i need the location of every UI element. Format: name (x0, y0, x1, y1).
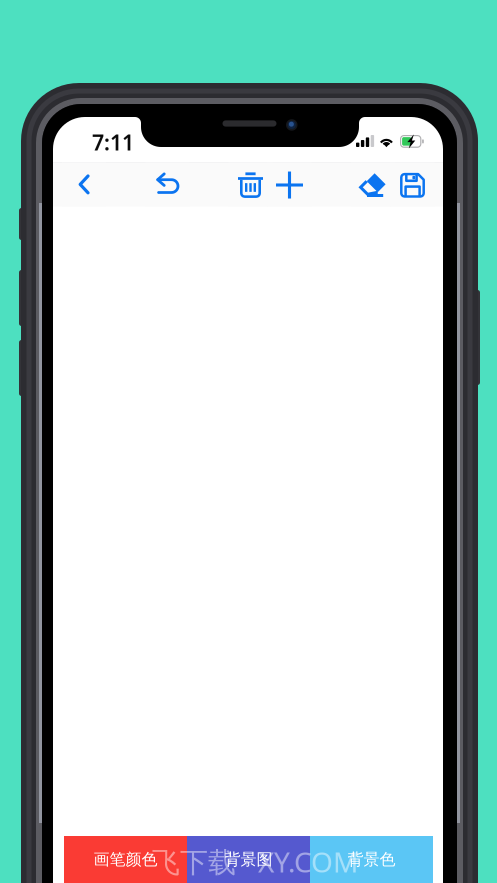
button[interactable]: Eraser (351, 163, 395, 207)
button[interactable]: Delete (228, 163, 272, 207)
button[interactable]: 背景色 (310, 836, 433, 883)
staticText: 7:11 (92, 128, 134, 156)
staticText: 画笔颜色 (93, 850, 157, 869)
button[interactable]: 背景图 (187, 836, 310, 883)
button[interactable]: Add (267, 163, 311, 207)
button[interactable]: 画笔颜色 (64, 836, 187, 883)
staticText: 背景色 (347, 850, 395, 869)
staticText: 飞下载 · XY.COM (152, 843, 358, 880)
button[interactable]: Undo (145, 163, 189, 207)
staticText: 背景图 (224, 850, 272, 869)
button[interactable]: Save (390, 163, 434, 207)
button[interactable]: Back (62, 163, 106, 207)
